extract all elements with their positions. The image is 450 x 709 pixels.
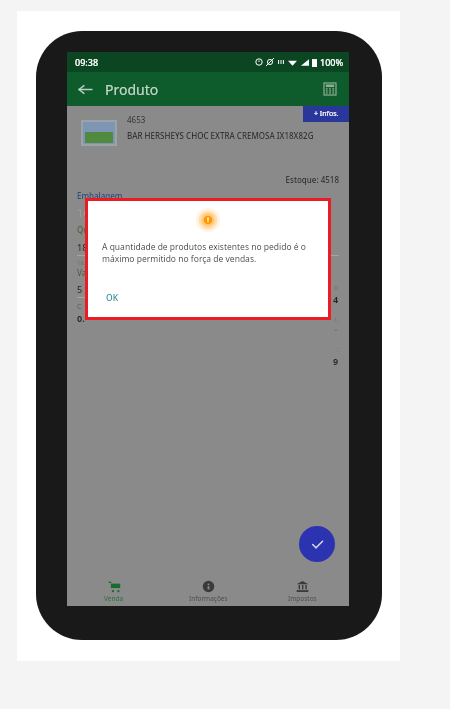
staticText: : bbox=[337, 345, 339, 355]
staticText: 1CX - 4DS bbox=[77, 205, 127, 220]
staticText: /. bbox=[334, 315, 339, 325]
staticText: OK bbox=[106, 292, 119, 304]
staticText: Valor bbox=[77, 267, 208, 278]
staticText: = bbox=[334, 325, 339, 335]
staticText: Embalagem bbox=[77, 190, 123, 201]
button[interactable]: OK bbox=[106, 292, 119, 304]
staticText: 4 bbox=[333, 293, 339, 305]
button[interactable]: Confirmar bbox=[299, 526, 335, 562]
staticText: + Infos. bbox=[314, 109, 339, 119]
staticText: Informações bbox=[189, 594, 228, 603]
button[interactable]: Voltar bbox=[73, 77, 97, 101]
staticText: C bbox=[77, 302, 82, 312]
staticText: Venda bbox=[104, 594, 124, 603]
staticText: 9 bbox=[333, 355, 339, 367]
staticText: 18.0 bbox=[77, 241, 95, 253]
staticText: o bbox=[334, 283, 339, 293]
staticText: 18.0x1.0 = 18.0 bbox=[77, 259, 120, 267]
staticText: Vl Total: bbox=[208, 267, 339, 278]
staticText: BAR HERSHEYS CHOC EXTRA CREMOSA IX18X82G bbox=[127, 130, 314, 141]
staticText: Desconto bbox=[208, 224, 339, 235]
staticText: 0.000000 bbox=[208, 241, 247, 253]
staticText: 4653 bbox=[127, 114, 146, 125]
staticText: 09:38 bbox=[75, 56, 99, 68]
button[interactable]: + Infos. bbox=[303, 106, 349, 122]
button[interactable]: Venda bbox=[67, 576, 161, 606]
staticText: A quantidade de produtos existentes no p… bbox=[102, 241, 312, 265]
staticText: 0. bbox=[77, 312, 85, 324]
button[interactable]: Informações bbox=[161, 576, 255, 606]
staticText: 5 bbox=[77, 283, 83, 295]
button[interactable]: Calculadora bbox=[319, 78, 341, 100]
staticText: Quantidade bbox=[77, 224, 208, 235]
staticText: Estoque: 4518 bbox=[77, 174, 339, 185]
staticText: Impostos bbox=[288, 594, 317, 603]
staticText: Produto bbox=[105, 80, 159, 99]
button[interactable]: Impostos bbox=[255, 576, 349, 606]
staticText: 100% bbox=[320, 56, 344, 68]
